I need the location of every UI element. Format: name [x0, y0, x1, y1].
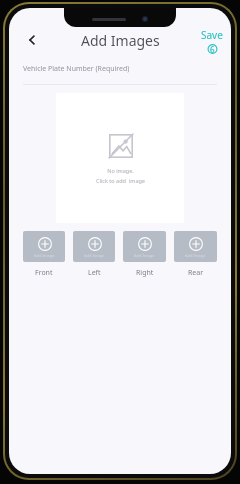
staticText: Front — [35, 268, 53, 278]
button[interactable]: Back — [19, 27, 45, 53]
staticText: Add Image — [185, 253, 206, 258]
staticText: Add Image — [84, 253, 105, 258]
staticText: 6 — [210, 44, 215, 54]
button[interactable]: Save — [201, 28, 223, 54]
button[interactable]: Add Image — [174, 231, 217, 278]
staticText: Right — [136, 268, 154, 278]
staticText: Vehicle Plate Number (Required) — [23, 64, 130, 74]
staticText: Add Images — [81, 31, 160, 50]
other: No image — [108, 133, 134, 159]
staticText: Add Image — [134, 253, 155, 258]
staticText: Left — [88, 268, 101, 278]
staticText: Save — [201, 28, 223, 42]
staticText: Click to add image — [96, 177, 145, 184]
button[interactable]: No image — [56, 93, 184, 223]
button[interactable]: Add Image — [123, 231, 166, 278]
staticText: No image. — [107, 167, 134, 174]
staticText: Rear — [188, 268, 204, 278]
staticText: Add Image — [34, 253, 55, 258]
button[interactable]: Add Image — [73, 231, 115, 278]
button[interactable]: Add Image — [23, 231, 65, 278]
